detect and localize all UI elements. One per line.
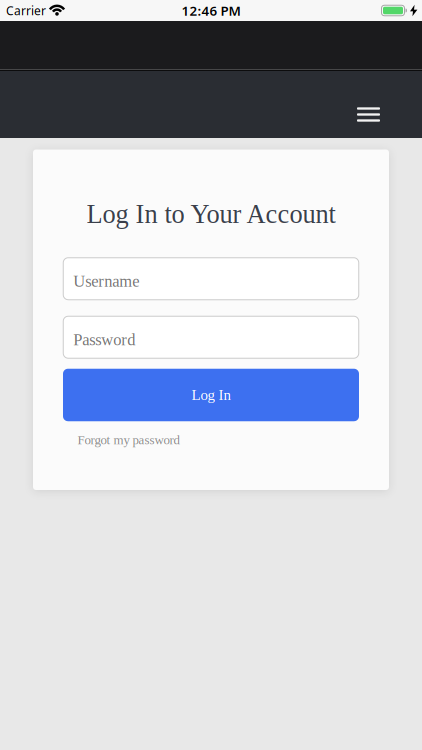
staticText: Carrier	[6, 2, 46, 18]
button[interactable]: Username	[63, 258, 359, 300]
button[interactable]: Password	[63, 316, 359, 358]
staticText: Forgot my password	[77, 433, 179, 447]
staticText: Username	[73, 272, 139, 290]
staticText: Log In	[191, 387, 230, 403]
staticText: 12:46 PM	[181, 2, 240, 19]
button[interactable]: Menu	[357, 107, 380, 122]
staticText: Password	[73, 331, 135, 349]
staticText: Log In to Your Account	[86, 199, 335, 229]
button[interactable]: Forgot my password	[77, 433, 179, 447]
button[interactable]: Log In	[63, 369, 359, 421]
